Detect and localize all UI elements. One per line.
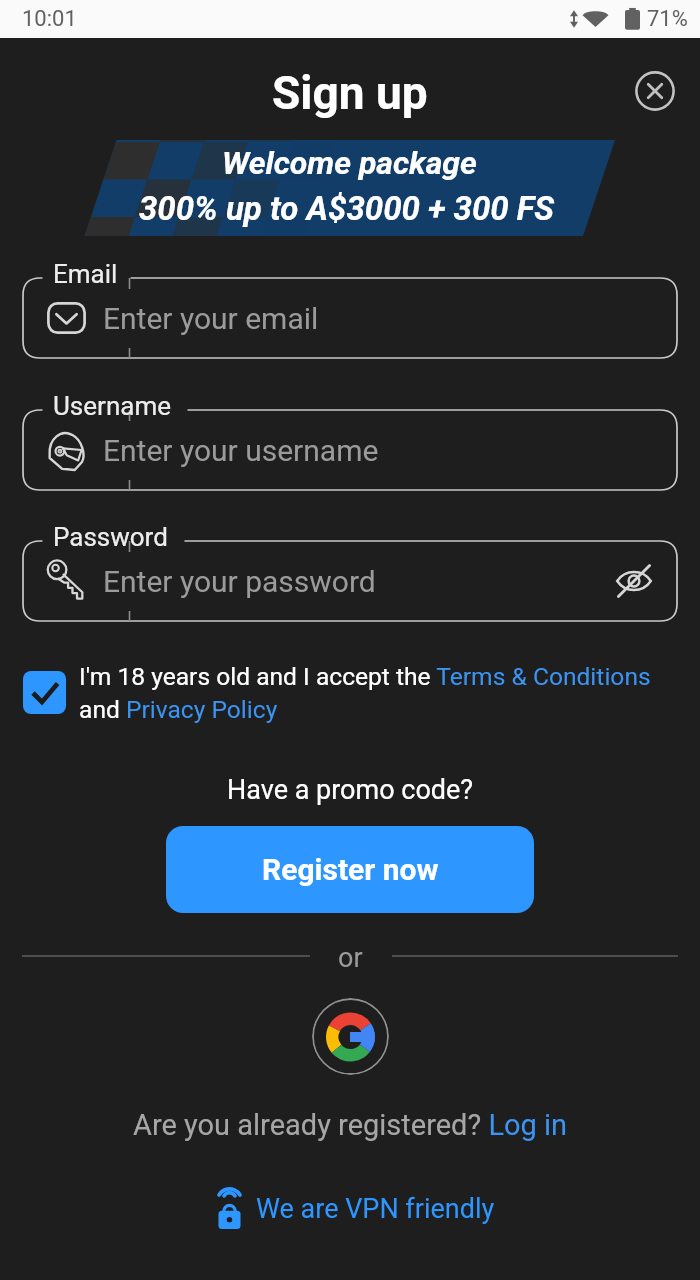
button[interactable]: I'm 18 years old and I accept the Terms … — [23, 662, 677, 724]
staticText: Username — [53, 391, 171, 421]
staticText: Password — [53, 522, 168, 552]
staticText: Welcome package — [222, 144, 477, 182]
staticText: or — [338, 942, 363, 972]
staticText: Enter your password — [103, 564, 376, 599]
staticText: 300% up to A$3000 + 300 FS — [139, 189, 555, 228]
staticText: 10:01 — [22, 6, 77, 32]
staticText: We are VPN friendly — [256, 1193, 495, 1225]
staticText: Enter your email — [103, 301, 319, 336]
staticText: 71% — [647, 6, 688, 32]
button[interactable]: We are VPN friendly — [218, 1189, 495, 1229]
button[interactable]: Enter your email — [23, 278, 677, 358]
staticText: Sign up — [272, 66, 428, 120]
button[interactable]: Enter your password — [23, 541, 677, 621]
button[interactable]: Are you already registered? Log in — [133, 1108, 568, 1142]
staticText: Email — [53, 259, 118, 289]
button[interactable]: Enter your username — [23, 410, 677, 490]
button[interactable]: Sign up with Google — [312, 998, 389, 1075]
staticText: Enter your username — [103, 433, 379, 468]
staticText: I'm 18 years old and I accept the Terms … — [79, 662, 677, 724]
button[interactable]: Close — [633, 69, 677, 113]
button[interactable]: Have a promo code? — [227, 774, 474, 806]
button[interactable]: Show password — [612, 559, 656, 603]
staticText: Register now — [262, 852, 439, 887]
button[interactable]: Register now — [166, 826, 534, 913]
